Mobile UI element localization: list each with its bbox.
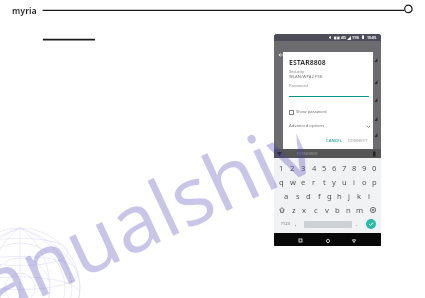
- button[interactable]: e: [298, 175, 309, 189]
- staticText: manualshive.com: [0, 93, 323, 298]
- button[interactable]: 7: [339, 161, 349, 175]
- staticText: 2: [290, 163, 295, 173]
- staticText: j: [348, 191, 350, 201]
- staticText: c: [314, 205, 318, 215]
- staticText: 7: [342, 163, 347, 173]
- button[interactable]: w: [287, 175, 298, 189]
- staticText: r: [312, 177, 316, 187]
- button[interactable]: s: [292, 189, 303, 203]
- button[interactable]: Backspace: [365, 203, 381, 217]
- staticText: 5: [322, 163, 327, 173]
- button[interactable]: j: [344, 189, 354, 203]
- button[interactable]: 3: [298, 161, 309, 175]
- staticText: e: [301, 177, 306, 187]
- staticText: 4G: [341, 35, 346, 40]
- staticText: myria: [12, 5, 37, 17]
- button[interactable]: k: [354, 189, 364, 203]
- button[interactable]: 1: [276, 161, 287, 175]
- staticText: 8: [352, 163, 357, 173]
- staticText: .: [356, 220, 358, 228]
- button[interactable]: c: [310, 203, 321, 217]
- button[interactable]: x: [299, 203, 310, 217]
- staticText: 6: [332, 163, 337, 173]
- staticText: s: [296, 191, 300, 201]
- button[interactable]: d: [303, 189, 314, 203]
- staticText: Password: [289, 83, 308, 89]
- button[interactable]: 2: [287, 161, 298, 175]
- staticText: ESTAR8808: [289, 58, 326, 68]
- staticText: Security: [289, 69, 305, 74]
- staticText: 0: [372, 163, 377, 173]
- staticText: x: [302, 205, 307, 215]
- staticText: 15:05: [367, 35, 377, 40]
- staticText: CANCEL: [326, 138, 342, 144]
- button[interactable]: l: [364, 189, 374, 203]
- button[interactable]: u: [339, 175, 349, 189]
- button[interactable]: p: [369, 175, 379, 189]
- staticText: f: [318, 191, 321, 201]
- staticText: 11%: [352, 35, 360, 40]
- staticText: ESTAR8808: [297, 151, 318, 156]
- button[interactable]: b: [332, 203, 343, 217]
- button[interactable]: ?123: [279, 217, 293, 231]
- button[interactable]: Show password: [288, 108, 328, 116]
- staticText: Show password: [296, 109, 327, 115]
- button[interactable]: 8: [349, 161, 359, 175]
- button[interactable]: z: [289, 203, 299, 217]
- staticText: i: [353, 177, 355, 187]
- button[interactable]: g: [324, 189, 334, 203]
- staticText: o: [362, 177, 367, 187]
- staticText: u: [342, 177, 347, 187]
- button[interactable]: 9: [359, 161, 369, 175]
- button[interactable]: Recents: [295, 235, 306, 246]
- staticText: h: [337, 191, 342, 201]
- staticText: 1: [279, 163, 284, 173]
- button[interactable]: CANCEL: [323, 136, 345, 146]
- staticText: n: [346, 205, 351, 215]
- button[interactable]: m: [354, 203, 365, 217]
- button[interactable]: Enter: [366, 219, 376, 229]
- button[interactable]: r: [309, 175, 319, 189]
- staticText: q: [279, 177, 284, 187]
- staticText: y: [332, 177, 336, 187]
- staticText: 3: [301, 163, 306, 173]
- staticText: v: [325, 205, 329, 215]
- staticText: CONNECT: [348, 138, 368, 144]
- button[interactable]: CONNECT: [345, 136, 371, 146]
- button[interactable]: o: [359, 175, 369, 189]
- button[interactable]: y: [329, 175, 339, 189]
- button[interactable]: i: [349, 175, 359, 189]
- button[interactable]: v: [321, 203, 332, 217]
- staticText: 9: [362, 163, 367, 173]
- button[interactable]: Home: [322, 235, 333, 246]
- button[interactable]: 0: [369, 161, 379, 175]
- button[interactable]: Back: [348, 235, 359, 246]
- staticText: Advanced options: [289, 123, 325, 129]
- button[interactable]: Shift: [274, 203, 289, 217]
- staticText: 4: [312, 163, 317, 173]
- button[interactable]: 5: [319, 161, 329, 175]
- staticText: t: [323, 177, 326, 187]
- staticText: ?123: [281, 221, 291, 227]
- button[interactable]: Advanced options: [288, 122, 372, 130]
- button[interactable]: h: [334, 189, 344, 203]
- staticText: WLAN/WPA2 PSK: [289, 74, 323, 80]
- staticText: w: [290, 177, 296, 187]
- staticText: k: [357, 191, 362, 201]
- button[interactable]: f: [314, 189, 324, 203]
- staticText: a: [284, 191, 289, 201]
- button[interactable]: n: [343, 203, 354, 217]
- button[interactable]: a: [281, 189, 292, 203]
- staticText: p: [372, 177, 377, 187]
- button[interactable]: q: [276, 175, 287, 189]
- staticText: m: [356, 205, 364, 215]
- staticText: b: [335, 205, 340, 215]
- button[interactable]: .: [352, 217, 362, 231]
- button[interactable]: t: [319, 175, 329, 189]
- button[interactable]: 4: [309, 161, 319, 175]
- button[interactable]: ,: [291, 217, 301, 231]
- staticText: z: [292, 205, 296, 215]
- button[interactable]: 6: [329, 161, 339, 175]
